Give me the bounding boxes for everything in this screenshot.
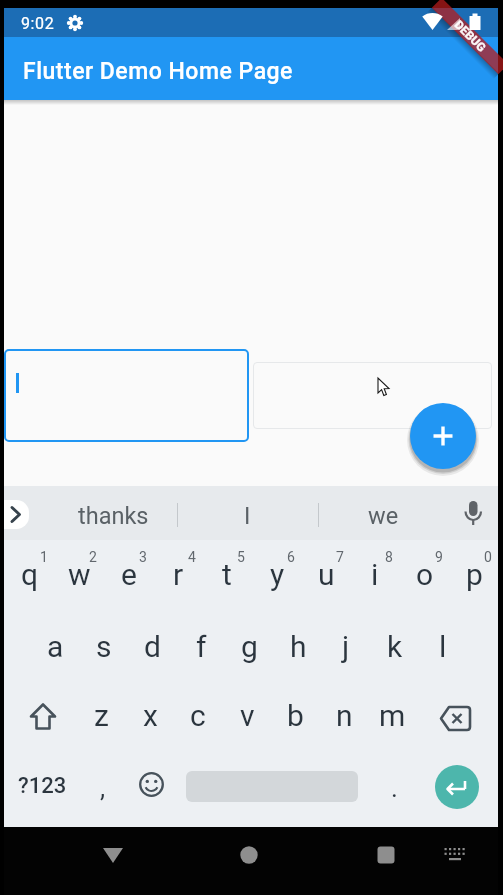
button[interactable]: a (32, 619, 78, 673)
button[interactable] (366, 835, 406, 875)
button[interactable]: we (328, 496, 438, 536)
staticText: g (241, 629, 258, 664)
staticText: e (121, 557, 137, 592)
staticText: t (222, 557, 232, 592)
button[interactable]: f (178, 619, 224, 673)
button[interactable]: , (83, 766, 123, 810)
button[interactable]: u (303, 547, 349, 601)
staticText: c (190, 698, 206, 733)
staticText: u (318, 557, 335, 592)
staticText: 7 (336, 549, 344, 565)
button[interactable]: h (275, 619, 321, 673)
button[interactable]: c (175, 688, 221, 742)
button[interactable]: t (204, 547, 250, 601)
button[interactable] (434, 697, 476, 739)
staticText: k (387, 629, 403, 664)
button[interactable]: y (254, 547, 300, 601)
button[interactable] (253, 362, 492, 429)
button[interactable] (136, 769, 167, 800)
staticText: we (368, 502, 399, 530)
button[interactable]: p (451, 547, 497, 601)
staticText: q (21, 557, 39, 592)
staticText: 2 (89, 549, 97, 565)
staticText: 4 (188, 549, 196, 565)
staticText: 3 (139, 549, 147, 565)
staticText: r (173, 557, 184, 592)
button[interactable] (22, 697, 64, 739)
button[interactable]: g (226, 619, 272, 673)
staticText: thanks (78, 502, 149, 530)
button[interactable]: r (155, 547, 201, 601)
staticText: o (416, 557, 434, 592)
staticText: s (96, 629, 112, 664)
button[interactable]: . (374, 766, 414, 810)
staticText: l (439, 629, 447, 664)
staticText: ?123 (18, 773, 67, 799)
staticText: i (371, 557, 379, 592)
button[interactable]: b (272, 688, 318, 742)
button[interactable]: j (323, 619, 369, 673)
staticText: n (336, 698, 353, 733)
staticText: p (466, 557, 483, 592)
staticText: m (379, 698, 406, 733)
button[interactable]: m (369, 688, 415, 742)
button[interactable]: x (127, 688, 173, 742)
button[interactable] (229, 835, 269, 875)
button[interactable]: d (129, 619, 175, 673)
staticText: 5 (237, 549, 245, 565)
staticText: h (290, 629, 307, 664)
staticText: j (342, 629, 350, 664)
staticText: w (68, 557, 91, 592)
staticText: I (244, 502, 251, 530)
staticText: 1 (40, 549, 48, 565)
button[interactable] (458, 498, 488, 532)
staticText: v (240, 698, 255, 733)
button[interactable]: z (78, 688, 124, 742)
staticText: , (100, 773, 106, 803)
button[interactable]: q (7, 547, 53, 601)
button[interactable] (435, 765, 479, 809)
staticText: Flutter Demo Home Page (23, 58, 293, 85)
button[interactable]: I (192, 496, 302, 536)
button[interactable]: o (402, 547, 448, 601)
staticText: 9:02 (21, 14, 55, 33)
button[interactable]: w (56, 547, 102, 601)
staticText: DEBUG (452, 18, 489, 55)
button[interactable]: ?123 (10, 764, 74, 808)
button[interactable] (440, 841, 470, 867)
button[interactable]: e (106, 547, 152, 601)
button[interactable] (4, 349, 249, 442)
staticText: b (287, 698, 304, 733)
button[interactable]: s (81, 619, 127, 673)
button[interactable] (93, 838, 133, 870)
staticText: x (143, 698, 158, 733)
button[interactable] (410, 403, 476, 469)
staticText: 0 (484, 549, 492, 565)
staticText: . (391, 773, 398, 803)
button[interactable]: i (352, 547, 398, 601)
button[interactable]: n (321, 688, 367, 742)
staticText: 8 (385, 549, 393, 565)
button[interactable]: thanks (53, 496, 173, 536)
staticText: 9 (435, 549, 443, 565)
staticText: a (47, 629, 64, 664)
staticText: d (144, 629, 161, 664)
staticText: f (196, 629, 207, 664)
button[interactable]: v (224, 688, 270, 742)
staticText: y (270, 557, 285, 592)
staticText: 6 (287, 549, 295, 565)
button[interactable]: l (420, 619, 466, 673)
staticText: z (94, 698, 109, 733)
button[interactable] (4, 500, 29, 529)
button[interactable]: k (372, 619, 418, 673)
